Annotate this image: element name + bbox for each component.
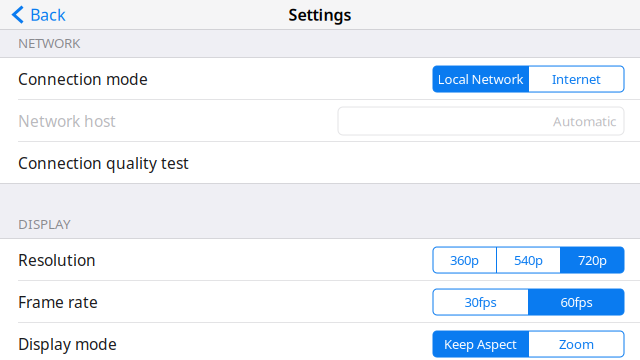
staticText: Settings bbox=[288, 4, 351, 25]
button[interactable]: Local Network bbox=[433, 66, 528, 92]
button[interactable]: Display mode bbox=[0, 323, 640, 360]
button[interactable]: Resolution bbox=[0, 239, 640, 281]
staticText: Resolution bbox=[18, 249, 96, 271]
staticText: DISPLAY bbox=[18, 215, 71, 233]
staticText: Internet bbox=[552, 70, 601, 88]
button[interactable]: 540p bbox=[497, 247, 560, 273]
button[interactable]: Zoom bbox=[529, 331, 624, 357]
staticText: Display mode bbox=[18, 333, 117, 355]
staticText: Automatic bbox=[553, 112, 616, 130]
staticText: Local Network bbox=[437, 70, 523, 88]
button[interactable]: 360p bbox=[433, 247, 496, 273]
staticText: Keep Aspect bbox=[444, 335, 517, 353]
button[interactable]: Frame rate bbox=[0, 281, 640, 323]
button[interactable]: Back bbox=[0, 0, 76, 28]
staticText: Zoom bbox=[559, 335, 594, 353]
staticText: Back bbox=[30, 4, 66, 25]
button[interactable]: 30fps bbox=[433, 289, 528, 315]
staticText: 540p bbox=[514, 251, 543, 269]
staticText: 360p bbox=[450, 251, 479, 269]
staticText: 720p bbox=[578, 251, 607, 269]
button[interactable]: Connection mode bbox=[0, 58, 640, 100]
button[interactable]: 720p bbox=[561, 247, 624, 273]
button[interactable]: Connection quality test bbox=[0, 142, 640, 184]
staticText: Connection quality test bbox=[18, 152, 189, 174]
staticText: Frame rate bbox=[18, 291, 98, 313]
button[interactable]: Internet bbox=[529, 66, 624, 92]
button[interactable]: Keep Aspect bbox=[433, 331, 528, 357]
staticText: Network host bbox=[18, 110, 116, 132]
button[interactable]: 60fps bbox=[529, 289, 624, 315]
staticText: Connection mode bbox=[18, 68, 148, 90]
staticText: 60fps bbox=[560, 293, 592, 311]
staticText: NETWORK bbox=[18, 34, 80, 52]
staticText: 30fps bbox=[464, 293, 496, 311]
button[interactable]: Network host bbox=[0, 100, 640, 142]
